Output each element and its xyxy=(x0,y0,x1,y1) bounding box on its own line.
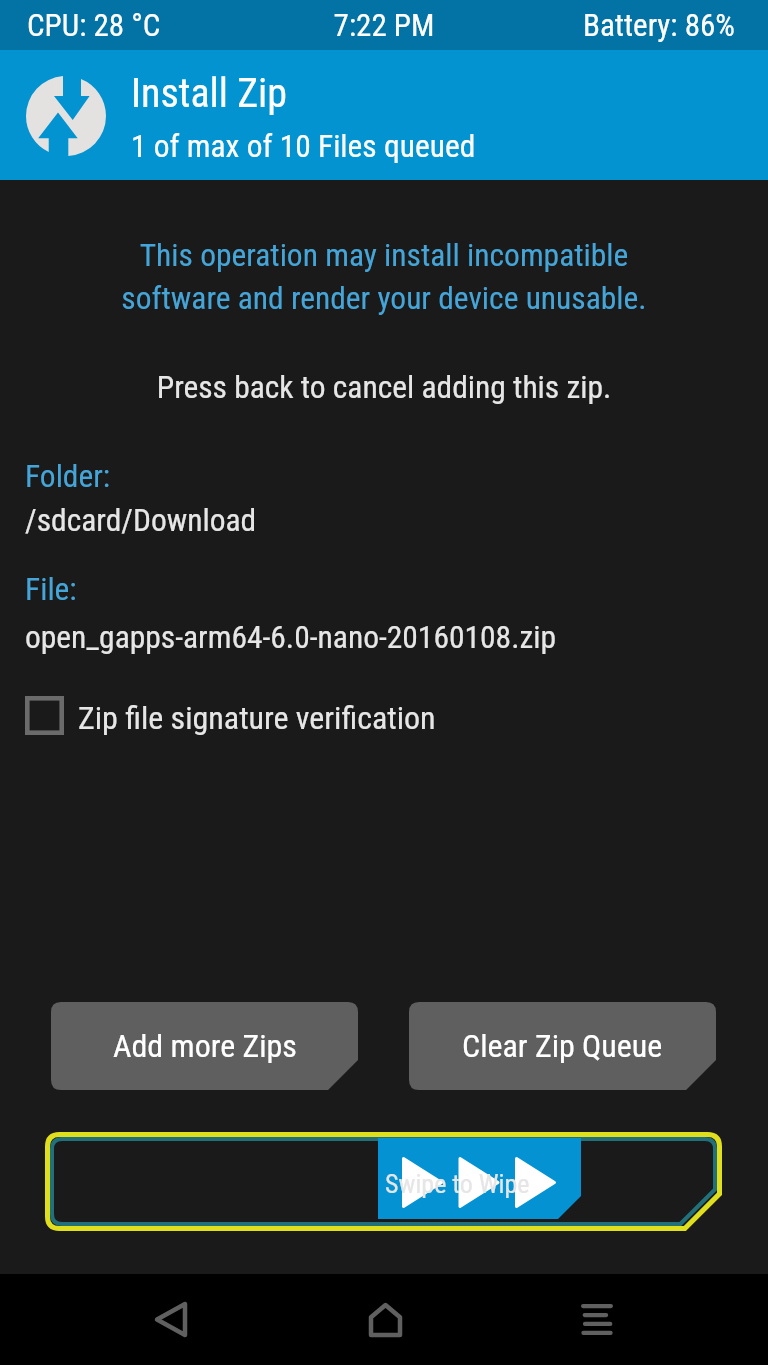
button[interactable]: Add more Zips xyxy=(51,1002,358,1090)
staticText: Install Zip xyxy=(131,70,287,117)
button[interactable]: Back xyxy=(125,1274,217,1365)
staticText: /sdcard/Download xyxy=(25,502,257,539)
staticText: Zip file signature verification xyxy=(78,699,436,737)
staticText: open_gapps-arm64-6.0-nano-20160108.zip xyxy=(25,619,557,656)
staticText: Battery: 86% xyxy=(583,7,735,43)
staticText: File: xyxy=(25,571,77,608)
button[interactable]: Menu xyxy=(551,1274,643,1365)
button[interactable]: Clear Zip Queue xyxy=(409,1002,716,1090)
button[interactable]: Zip file signature verification xyxy=(18,688,448,743)
button[interactable]: Home xyxy=(339,1274,431,1365)
staticText: CPU: 28 °C xyxy=(27,7,161,43)
button[interactable]: Swipe to Wipe xyxy=(45,1132,722,1231)
staticText: Swipe to Wipe xyxy=(385,1169,530,1199)
staticText: Add more Zips xyxy=(113,1027,297,1065)
staticText: Folder: xyxy=(25,458,111,495)
staticText: This operation may install incompatible … xyxy=(0,237,768,317)
staticText: Clear Zip Queue xyxy=(462,1027,663,1065)
staticText: Press back to cancel adding this zip. xyxy=(0,369,768,406)
staticText: 1 of max of 10 Files queued xyxy=(131,128,476,165)
staticText: 7:22 PM xyxy=(0,7,768,43)
